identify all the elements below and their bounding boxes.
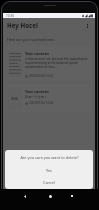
button[interactable]: Text content — [6, 46, 92, 81]
staticText: 10:30 — [6, 14, 15, 18]
staticText: Text content — [25, 89, 49, 94]
staticText: 我是 — [11, 97, 19, 102]
button[interactable]: More options — [83, 21, 92, 30]
staticText: Cancel — [43, 180, 55, 185]
button[interactable]: Cancel — [5, 176, 93, 189]
staticText: n this section, we present the quantitat… — [25, 57, 89, 69]
staticText: Yes — [46, 168, 52, 173]
button[interactable]: Back — [18, 189, 32, 203]
staticText: 2023/01/04 16:52 — [29, 74, 54, 78]
staticText: 2023/01/04 16:52 — [29, 101, 54, 105]
staticText: Here are your scanned texts — [7, 37, 55, 42]
button[interactable]: Home — [43, 189, 57, 203]
button[interactable]: Yes — [5, 164, 93, 176]
staticText: Hey Hocel — [7, 21, 38, 29]
button[interactable]: Recents — [65, 189, 79, 203]
button[interactable]: 我是 — [6, 84, 92, 113]
staticText: 我是一个中国人 — [25, 95, 48, 99]
staticText: Are you sure you want to delete? — [20, 155, 79, 160]
staticText: Text content — [25, 51, 49, 56]
